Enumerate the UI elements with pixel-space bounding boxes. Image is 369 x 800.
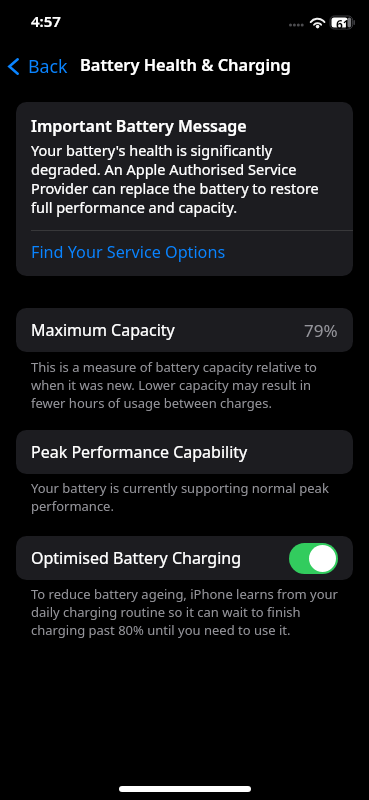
staticText: To reduce battery ageing, iPhone learns … (31, 585, 338, 639)
staticText: 61 (336, 16, 350, 32)
button[interactable]: Maximum Capacity (16, 308, 353, 352)
staticText: 4:57 (31, 11, 61, 31)
staticText: Your battery is currently supporting nor… (31, 479, 338, 515)
button[interactable]: Find Your Service Options (16, 231, 353, 276)
button[interactable]: Optimised Battery Charging, on (289, 543, 338, 574)
button[interactable]: Peak Performance Capability (16, 430, 353, 474)
staticText: Important Battery Message (31, 115, 247, 137)
staticText: Battery Health & Charging (80, 53, 291, 75)
button[interactable]: Back (2, 47, 74, 85)
other: Wi-Fi (311, 16, 325, 28)
staticText: Optimised Battery Charging (31, 547, 242, 569)
staticText: Peak Performance Capability (31, 441, 248, 463)
other: Cellular signal (289, 22, 306, 28)
staticText: This is a measure of battery capacity re… (31, 358, 338, 412)
button[interactable]: Optimised Battery Charging (16, 536, 353, 580)
other: Battery 61 percent (330, 16, 355, 32)
staticText: Find Your Service Options (31, 241, 226, 263)
staticText: Maximum Capacity (31, 319, 175, 341)
staticText: 79% (304, 319, 338, 342)
staticText: Your battery's health is significantly d… (31, 140, 338, 217)
staticText: Back (28, 54, 68, 78)
